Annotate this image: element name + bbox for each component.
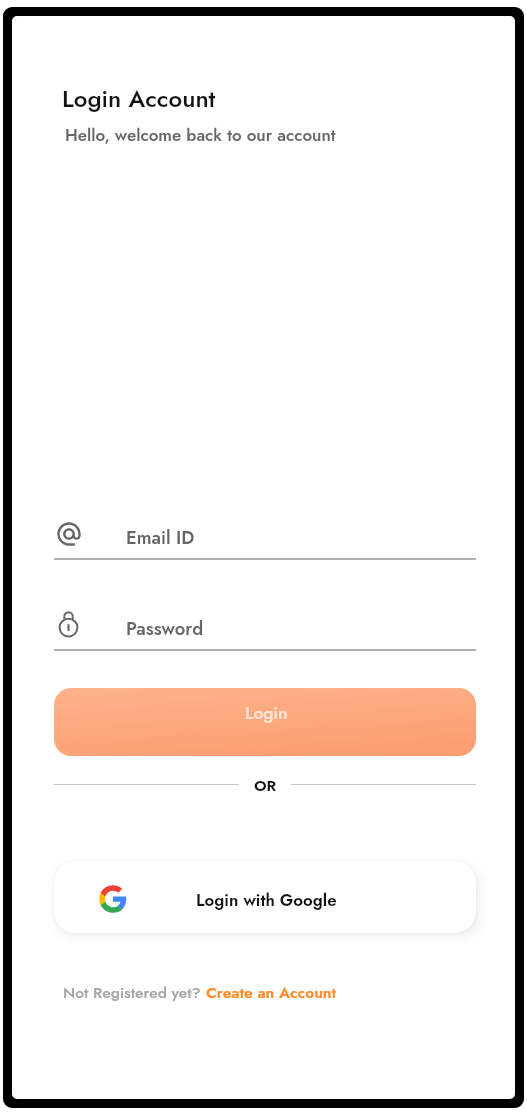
staticText: OR — [254, 774, 277, 796]
staticText: Not Registered yet? — [63, 981, 206, 1003]
button[interactable]: Password field — [54, 603, 476, 650]
button[interactable]: Email ID field — [54, 512, 476, 559]
staticText: Login Account — [62, 81, 216, 116]
staticText: Login — [245, 701, 288, 726]
button[interactable]: Login — [54, 688, 476, 756]
button[interactable]: Login with Google — [54, 861, 476, 933]
staticText: Hello, welcome back to our account — [65, 123, 336, 148]
staticText: Login with Google — [196, 888, 337, 912]
button[interactable]: Create an Account — [206, 981, 337, 1003]
staticText: Email ID — [126, 524, 195, 551]
staticText: Password — [126, 615, 204, 642]
